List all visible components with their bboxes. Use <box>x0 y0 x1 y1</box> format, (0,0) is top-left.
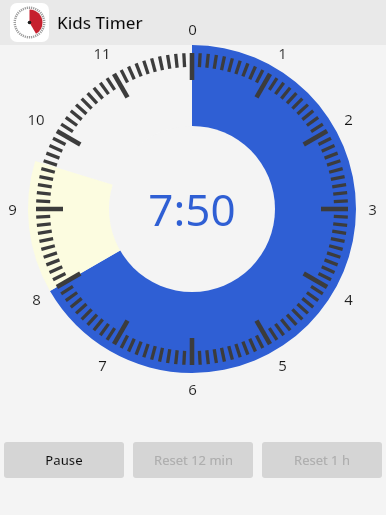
staticText: 10 <box>27 109 45 129</box>
staticText: Pause <box>45 451 83 469</box>
staticText: 8 <box>32 289 41 309</box>
staticText: 0 <box>188 19 197 39</box>
staticText: Reset 12 min <box>154 451 233 469</box>
staticText: 7 <box>98 355 107 375</box>
button[interactable]: Pause <box>4 442 124 478</box>
staticText: 1 <box>278 43 287 63</box>
button[interactable]: Reset 1 h <box>262 442 382 478</box>
staticText: 3 <box>368 199 377 219</box>
staticText: 11 <box>93 43 111 63</box>
staticText: 2 <box>344 109 353 129</box>
other: Kids Timer icon <box>10 3 49 42</box>
staticText: 5 <box>278 355 287 375</box>
staticText: 4 <box>344 289 353 309</box>
staticText: 9 <box>8 199 17 219</box>
staticText: Reset 1 h <box>294 451 350 469</box>
button[interactable]: Reset 12 min <box>133 442 253 478</box>
staticText: Kids Timer <box>57 11 143 34</box>
staticText: 7:50 <box>148 179 236 239</box>
staticText: 6 <box>188 379 197 399</box>
